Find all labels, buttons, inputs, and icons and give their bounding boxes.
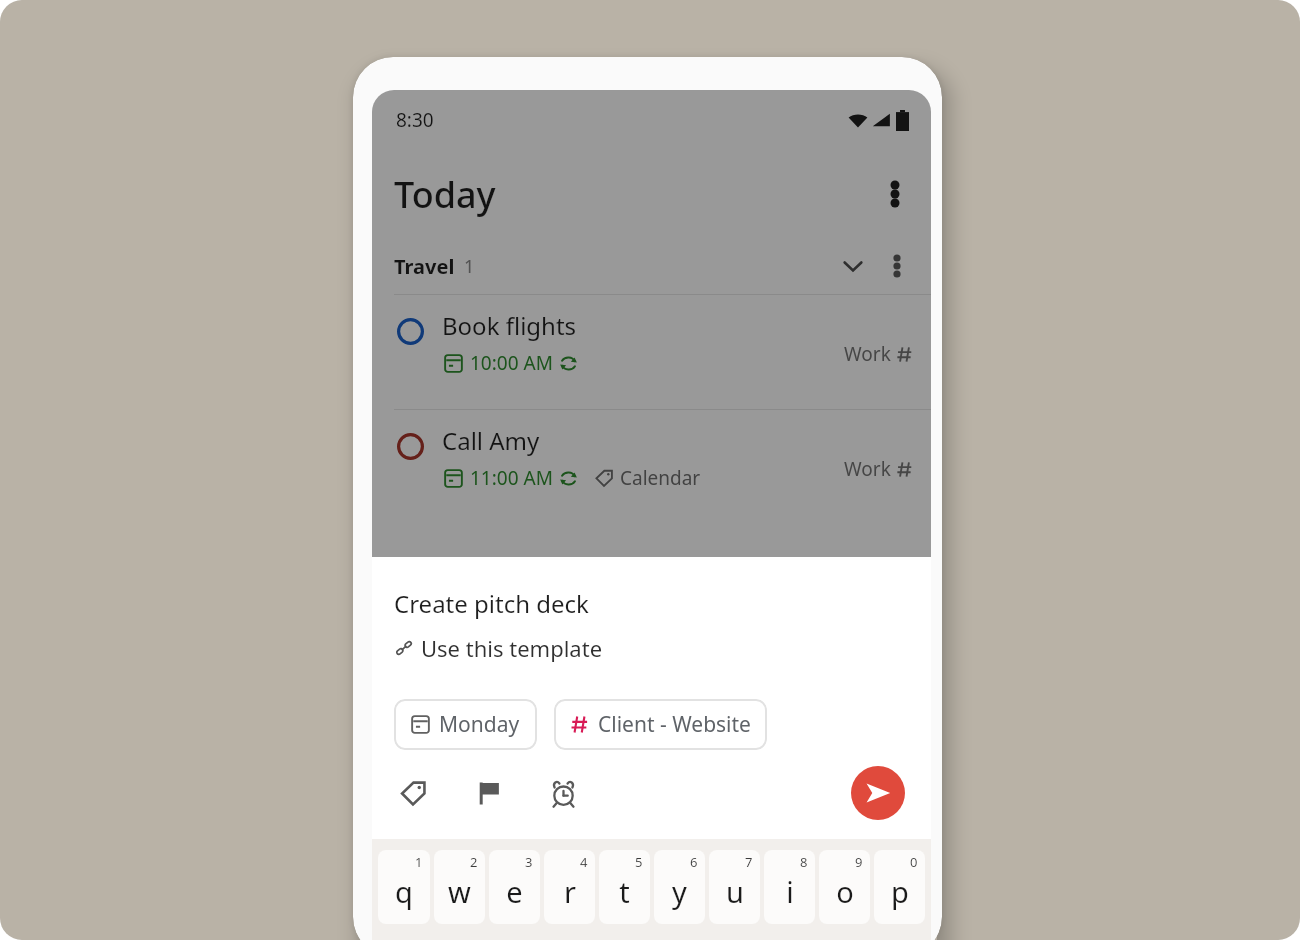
button[interactable]: Collapse section [831, 244, 875, 288]
button[interactable]: 0 [874, 850, 925, 924]
button[interactable]: Complete Call Amy [394, 430, 426, 462]
staticText: Travel [394, 253, 455, 280]
button[interactable]: 2 [434, 850, 485, 924]
staticText: y [672, 872, 687, 911]
staticText: Work [844, 456, 891, 482]
staticText: p [891, 872, 909, 911]
staticText: t [619, 872, 630, 911]
staticText: 5 [635, 853, 643, 871]
button[interactable]: 3 [489, 850, 540, 924]
staticText: 1 [464, 254, 475, 279]
staticText: Call Amy [442, 424, 540, 457]
staticText: 8:30 [396, 107, 434, 133]
button[interactable]: Set reminder [540, 770, 586, 816]
staticText: Use this template [421, 633, 603, 663]
button[interactable]: 1 [378, 850, 430, 924]
button[interactable]: Add task [851, 766, 905, 820]
staticText: 6 [690, 853, 698, 871]
button[interactable]: Section menu [875, 244, 919, 288]
button[interactable]: Monday [394, 699, 537, 750]
staticText: Monday [439, 710, 520, 739]
button[interactable]: 8 [764, 850, 815, 924]
staticText: i [786, 872, 794, 911]
button[interactable]: More options [871, 170, 919, 218]
staticText: e [506, 872, 523, 911]
staticText: Client - Website [598, 710, 751, 739]
button[interactable]: Set priority [466, 770, 512, 816]
staticText: o [836, 872, 854, 911]
button[interactable]: Add label [390, 770, 436, 816]
button[interactable]: 9 [819, 850, 870, 924]
staticText: 8 [800, 853, 808, 871]
staticText: 9 [855, 853, 863, 871]
staticText: u [726, 872, 744, 911]
button[interactable]: 4 [544, 850, 595, 924]
staticText: 3 [525, 853, 533, 871]
staticText: q [395, 872, 413, 911]
staticText: Create pitch deck [394, 587, 589, 620]
button[interactable]: Complete Book flights [372, 295, 931, 409]
button[interactable]: 7 [709, 850, 760, 924]
staticText: Book flights [442, 309, 577, 342]
staticText: Calendar [620, 465, 701, 491]
staticText: 2 [470, 853, 478, 871]
button[interactable]: Complete Call Amy [372, 410, 931, 524]
button[interactable]: 5 [599, 850, 650, 924]
staticText: 1 [415, 853, 423, 871]
staticText: 0 [910, 853, 918, 871]
button[interactable]: Complete Book flights [394, 315, 426, 347]
staticText: 7 [745, 853, 753, 871]
staticText: 10:00 AM [470, 350, 553, 376]
staticText: Today [394, 170, 496, 219]
staticText: 11:00 AM [470, 465, 553, 491]
button[interactable]: Travel [372, 238, 931, 294]
button[interactable]: Client - Website [554, 699, 767, 750]
staticText: w [448, 872, 471, 911]
button[interactable]: 6 [654, 850, 705, 924]
staticText: 4 [580, 853, 588, 871]
staticText: r [564, 872, 576, 911]
button[interactable]: Use this template [394, 633, 603, 663]
staticText: Work [844, 341, 891, 367]
